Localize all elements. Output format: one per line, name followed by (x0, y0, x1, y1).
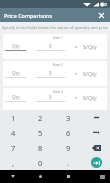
staticText: 4 (11, 128, 16, 138)
button[interactable]: 3 (54, 110, 82, 125)
staticText: $/Qty (83, 43, 97, 50)
staticText: Qty (12, 43, 20, 49)
staticText: = (75, 95, 78, 101)
staticText: = (75, 44, 78, 50)
staticText: $ (49, 43, 52, 49)
button[interactable]: $ (36, 94, 65, 102)
staticText: Item 3 (9, 90, 107, 94)
staticText: 3 (66, 113, 71, 123)
button[interactable]: Switch keyboard (94, 170, 110, 183)
button[interactable]: , (0, 155, 27, 170)
button[interactable]: Item 2 (3, 61, 107, 86)
button[interactable]: Next (82, 155, 110, 170)
staticText: 6 (66, 128, 71, 138)
staticText: 9 (66, 143, 71, 153)
button[interactable]: Qty (5, 70, 26, 78)
staticText: 7 (11, 143, 16, 153)
button[interactable]: Recents (55, 170, 81, 183)
button[interactable]: 9 (54, 140, 82, 155)
button[interactable]: Qty (5, 94, 26, 102)
staticText: Qty (12, 94, 20, 100)
button[interactable]: 5 (27, 125, 54, 140)
button[interactable]: 7 (0, 140, 27, 155)
staticText: . (67, 158, 70, 168)
staticText: Qty (12, 70, 20, 76)
button[interactable] (82, 110, 110, 125)
button[interactable]: Item 3 (3, 88, 107, 110)
button[interactable] (82, 125, 110, 140)
staticText: 1 (11, 113, 16, 123)
staticText: Item 1 (9, 36, 107, 40)
button[interactable]: 4 (0, 125, 27, 140)
staticText: $ (49, 94, 52, 100)
other: Backspace (92, 145, 101, 151)
button[interactable]: Close (94, 8, 108, 22)
staticText: Price Comparisons (4, 12, 53, 19)
staticText: Item 2 (9, 63, 107, 67)
button[interactable]: Home (26, 170, 55, 183)
staticText: Specify in the fields below the values o… (2, 25, 108, 30)
button[interactable]: 1 (0, 110, 27, 125)
button[interactable]: 6 (54, 125, 82, 140)
staticText: 2 (38, 113, 43, 123)
button[interactable]: $ (36, 70, 65, 78)
staticText: $/Qty (83, 70, 97, 77)
button[interactable]: 8 (27, 140, 54, 155)
staticText: $/Qty (83, 94, 97, 101)
button[interactable]: Qty (5, 43, 26, 51)
button[interactable]: 0 (27, 155, 54, 170)
staticText: 5 (38, 128, 43, 138)
staticText: 8 (38, 143, 43, 153)
button[interactable]: Item 1 (3, 34, 107, 59)
button[interactable]: $ (36, 43, 65, 51)
button[interactable]: 2 (27, 110, 54, 125)
button[interactable]: . (54, 155, 82, 170)
staticText: , (12, 158, 15, 168)
staticText: 0 (38, 158, 43, 168)
staticText: 8:00 (100, 2, 108, 7)
other: Next (91, 157, 102, 168)
button[interactable]: Back (0, 170, 26, 183)
staticText: = (75, 71, 78, 77)
button[interactable]: Backspace (82, 140, 110, 155)
staticText: $ (49, 70, 52, 76)
